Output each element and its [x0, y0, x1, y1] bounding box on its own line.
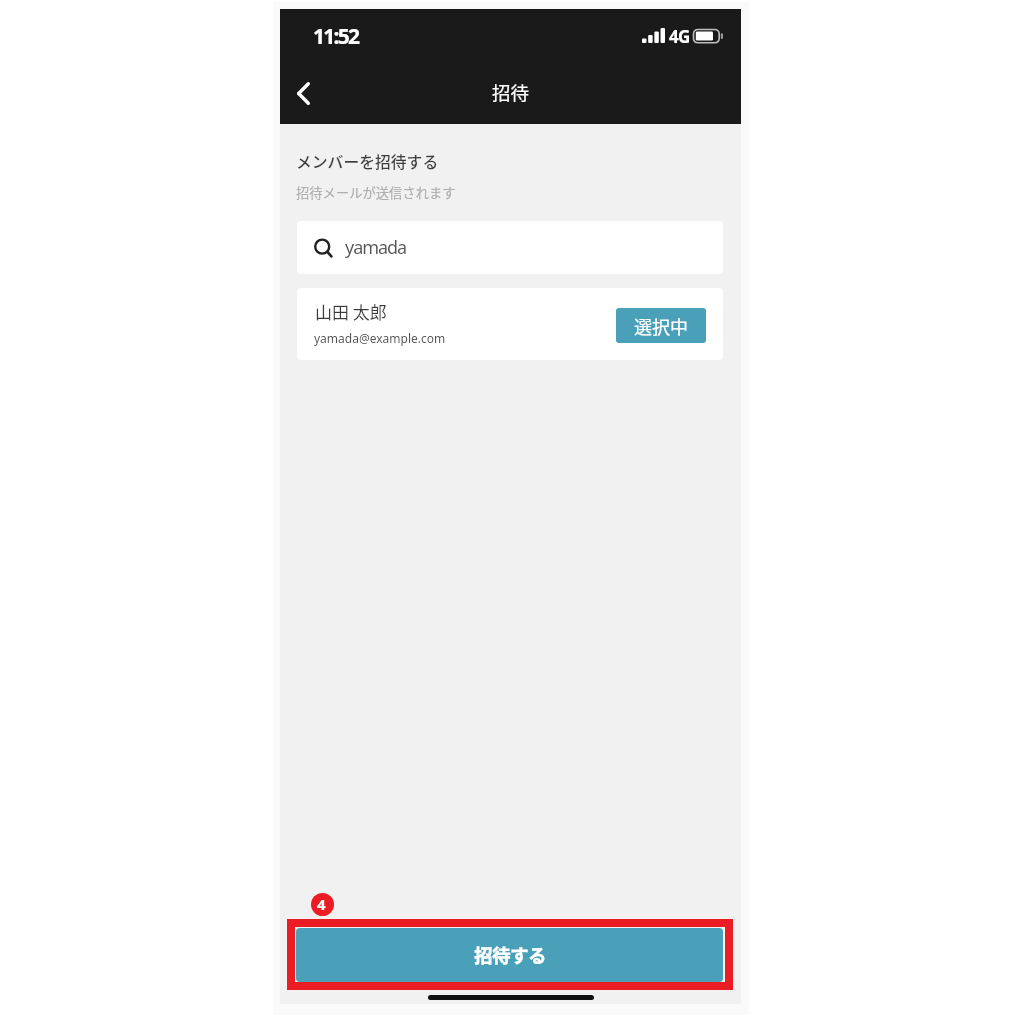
staticText: 11:52: [313, 22, 359, 51]
staticText: 招待する: [474, 942, 546, 968]
staticText: yamada@example.com: [314, 330, 446, 346]
button[interactable]: yamada: [297, 221, 723, 274]
staticText: 選択中: [634, 313, 688, 339]
button[interactable]: Back: [280, 68, 332, 120]
staticText: yamada: [345, 235, 407, 260]
staticText: メンバーを招待する: [296, 150, 439, 173]
button[interactable]: 招待する: [296, 928, 723, 982]
staticText: 招待: [280, 79, 741, 106]
staticText: 4: [317, 894, 326, 914]
staticText: 山田 太郎: [315, 299, 387, 324]
button[interactable]: 山田 太郎: [297, 288, 723, 360]
staticText: 招待メールが送信されます: [296, 183, 456, 202]
button[interactable]: 選択中: [616, 308, 706, 343]
staticText: 4G: [669, 25, 690, 48]
